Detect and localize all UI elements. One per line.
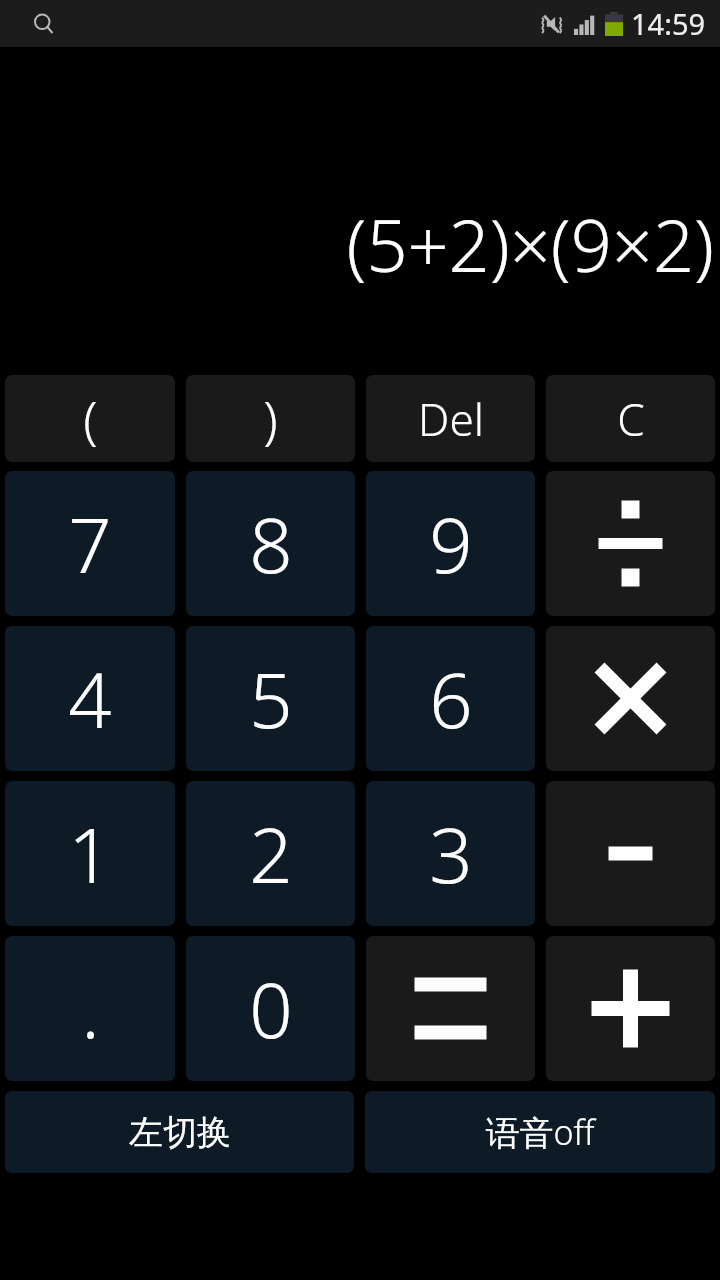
button[interactable]: 3 xyxy=(366,781,535,926)
button[interactable]: 1 xyxy=(5,781,175,926)
button[interactable]: . xyxy=(5,936,175,1081)
button[interactable]: Del xyxy=(366,375,535,462)
staticText: . xyxy=(81,957,100,1061)
button[interactable]: C xyxy=(546,375,715,462)
staticText: 7 xyxy=(68,492,112,596)
button[interactable]: 7 xyxy=(5,471,175,616)
button[interactable]: 8 xyxy=(186,471,355,616)
staticText: 9 xyxy=(429,492,473,596)
staticText: ) xyxy=(263,383,278,454)
staticText: 语音off xyxy=(485,1109,595,1155)
button[interactable]: 5 xyxy=(186,626,355,771)
button[interactable]: 左切换 xyxy=(5,1091,354,1173)
staticText: 14:59 xyxy=(631,4,706,43)
staticText: ( xyxy=(83,383,98,454)
button[interactable]: ( xyxy=(5,375,175,462)
button[interactable]: Minus xyxy=(546,781,715,926)
button[interactable]: 9 xyxy=(366,471,535,616)
staticText: 8 xyxy=(249,492,293,596)
staticText: 6 xyxy=(429,647,473,751)
button[interactable]: Multiply xyxy=(546,626,715,771)
staticText: C xyxy=(617,389,645,449)
staticText: 5 xyxy=(249,647,293,751)
staticText: Del xyxy=(418,389,484,449)
button[interactable]: Equals xyxy=(366,936,535,1081)
staticText: 0 xyxy=(249,957,293,1061)
button[interactable]: ) xyxy=(186,375,355,462)
staticText: 3 xyxy=(429,802,473,906)
staticText: (5+2)×(9×2) xyxy=(346,195,714,293)
staticText: 2 xyxy=(249,802,293,906)
button[interactable]: 6 xyxy=(366,626,535,771)
staticText: 4 xyxy=(68,647,112,751)
button[interactable]: Divide xyxy=(546,471,715,616)
button[interactable]: 语音off xyxy=(365,1091,715,1173)
staticText: 1 xyxy=(68,802,112,906)
button[interactable]: 0 xyxy=(186,936,355,1081)
button[interactable]: 2 xyxy=(186,781,355,926)
button[interactable]: 4 xyxy=(5,626,175,771)
other: Search xyxy=(33,13,55,35)
button[interactable]: Plus xyxy=(546,936,715,1081)
staticText: 左切换 xyxy=(129,1111,231,1154)
